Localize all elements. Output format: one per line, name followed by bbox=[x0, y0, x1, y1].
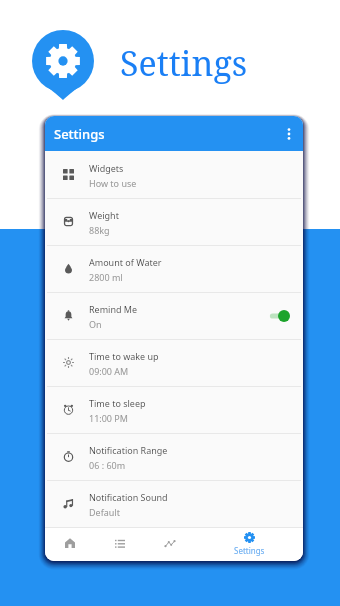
button[interactable]: Weight bbox=[45, 198, 303, 245]
button[interactable]: Home bbox=[45, 528, 95, 561]
staticText: 2800 ml bbox=[89, 271, 123, 283]
button[interactable]: Time to wake up bbox=[45, 339, 303, 386]
staticText: On bbox=[89, 318, 102, 330]
button[interactable]: Widgets bbox=[45, 151, 303, 198]
staticText: 11:00 PM bbox=[89, 412, 128, 424]
staticText: Notification Range bbox=[89, 444, 168, 456]
staticText: How to use bbox=[89, 177, 137, 189]
staticText: Weight bbox=[89, 209, 119, 221]
button[interactable]: Amount of Water bbox=[45, 245, 303, 292]
button[interactable]: Time to sleep bbox=[45, 386, 303, 433]
staticText: Default bbox=[89, 506, 120, 518]
staticText: Time to wake up bbox=[89, 350, 159, 362]
staticText: 88kg bbox=[89, 224, 110, 236]
button[interactable]: List bbox=[95, 528, 145, 561]
button[interactable]: Remind Me bbox=[45, 292, 303, 339]
button[interactable]: More options bbox=[280, 125, 298, 143]
staticText: Remind Me bbox=[89, 303, 138, 315]
button[interactable]: Notification Sound bbox=[45, 480, 303, 527]
button[interactable]: Notification Range bbox=[45, 433, 303, 480]
button[interactable]: Remind Me toggle bbox=[267, 308, 293, 324]
button[interactable]: Statistics bbox=[145, 528, 195, 561]
staticText: Time to sleep bbox=[89, 397, 146, 409]
staticText: Settings bbox=[234, 545, 265, 556]
staticText: Widgets bbox=[89, 162, 124, 174]
staticText: 06 : 60m bbox=[89, 459, 126, 471]
button[interactable]: Settings bbox=[195, 528, 303, 561]
staticText: Notification Sound bbox=[89, 491, 168, 503]
staticText: Amount of Water bbox=[89, 256, 162, 268]
staticText: Settings bbox=[120, 40, 248, 86]
staticText: Settings bbox=[54, 125, 105, 143]
staticText: 09:00 AM bbox=[89, 365, 129, 377]
